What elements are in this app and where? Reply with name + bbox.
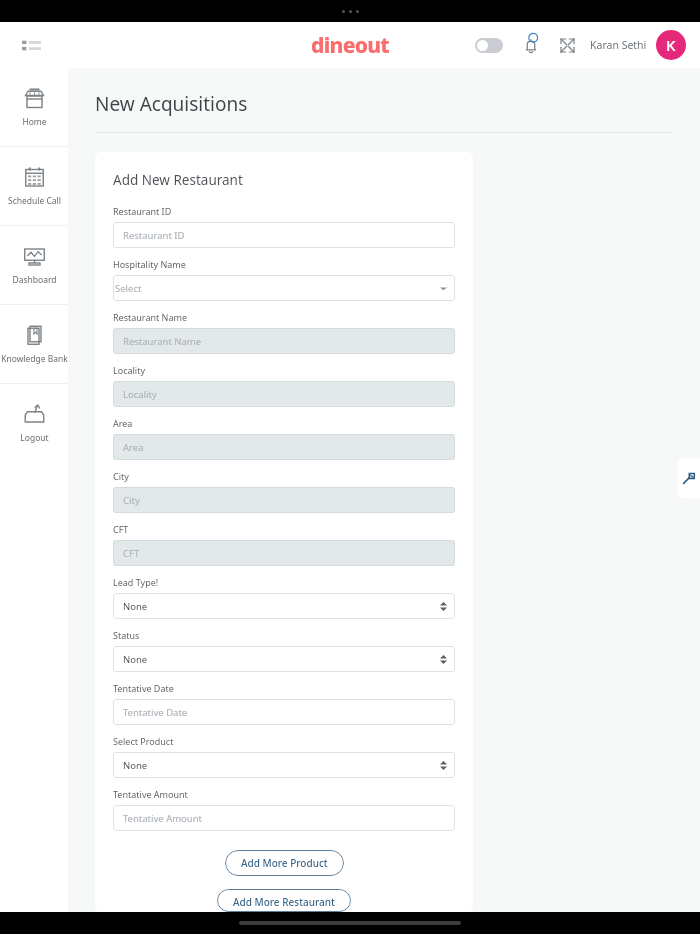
- button[interactable]: Schedule Call: [0, 147, 68, 225]
- button[interactable]: Home: [0, 68, 68, 146]
- staticText: Select: [115, 282, 142, 295]
- button[interactable]: Logout: [0, 384, 68, 462]
- button[interactable]: None: [113, 752, 455, 778]
- staticText: Add More Restaurant: [233, 895, 335, 906]
- staticText: Home: [22, 116, 47, 128]
- staticText: Hospitality Name: [113, 258, 186, 270]
- staticText: CFT: [113, 523, 129, 535]
- staticText: Tentative Amount: [123, 812, 203, 825]
- button[interactable]: Add More Restaurant: [217, 889, 351, 912]
- staticText: dineout: [311, 31, 390, 60]
- staticText: Locality: [113, 364, 146, 376]
- staticText: Add More Product: [241, 856, 328, 870]
- staticText: CFT: [123, 547, 140, 560]
- button[interactable]: Knowledge Bank: [0, 305, 68, 383]
- staticText: Lead Type!: [113, 576, 159, 588]
- staticText: Status: [113, 629, 140, 641]
- button[interactable]: City: [113, 487, 455, 513]
- staticText: Area: [113, 417, 133, 429]
- staticText: Select Product: [113, 735, 174, 747]
- staticText: Logout: [20, 432, 49, 444]
- button[interactable]: K: [656, 30, 686, 60]
- staticText: Restaurant Name: [123, 335, 202, 348]
- button[interactable]: Select: [113, 275, 455, 301]
- staticText: Locality: [123, 388, 157, 401]
- button[interactable]: Add More Product: [225, 850, 344, 876]
- staticText: Tentative Date: [113, 682, 174, 694]
- staticText: None: [123, 600, 148, 613]
- staticText: None: [123, 759, 148, 772]
- staticText: K: [666, 35, 676, 55]
- staticText: Knowledge Bank: [1, 353, 68, 365]
- staticText: Tentative Amount: [113, 788, 188, 800]
- button[interactable]: Area: [113, 434, 455, 460]
- button[interactable]: None: [113, 593, 455, 619]
- staticText: Restaurant ID: [123, 229, 185, 242]
- staticText: Schedule Call: [8, 195, 61, 207]
- button[interactable]: Menu: [16, 30, 46, 60]
- staticText: Restaurant Name: [113, 311, 187, 323]
- button[interactable]: Fullscreen: [555, 33, 579, 57]
- button[interactable]: CFT: [113, 540, 455, 566]
- staticText: New Acquisitions: [95, 91, 248, 117]
- staticText: City: [123, 494, 140, 507]
- button[interactable]: Dashboard: [0, 226, 68, 304]
- staticText: Tentative Date: [123, 706, 188, 719]
- staticText: Restaurant ID: [113, 205, 172, 217]
- button[interactable]: Restaurant ID: [113, 222, 455, 248]
- staticText: Dashboard: [12, 274, 57, 286]
- button[interactable]: Tentative Amount: [113, 805, 455, 831]
- staticText: None: [123, 653, 148, 666]
- button[interactable]: Restaurant Name: [113, 328, 455, 354]
- button[interactable]: None: [113, 646, 455, 672]
- staticText: Karan Sethi: [590, 38, 647, 52]
- button[interactable]: Feedback: [678, 458, 700, 498]
- button[interactable]: Toggle: [475, 38, 503, 53]
- button[interactable]: Tentative Date: [113, 699, 455, 725]
- button[interactable]: Locality: [113, 381, 455, 407]
- staticText: Add New Restaurant: [113, 171, 243, 189]
- staticText: City: [113, 470, 129, 482]
- staticText: Area: [123, 441, 144, 454]
- button[interactable]: Notifications: [518, 32, 544, 58]
